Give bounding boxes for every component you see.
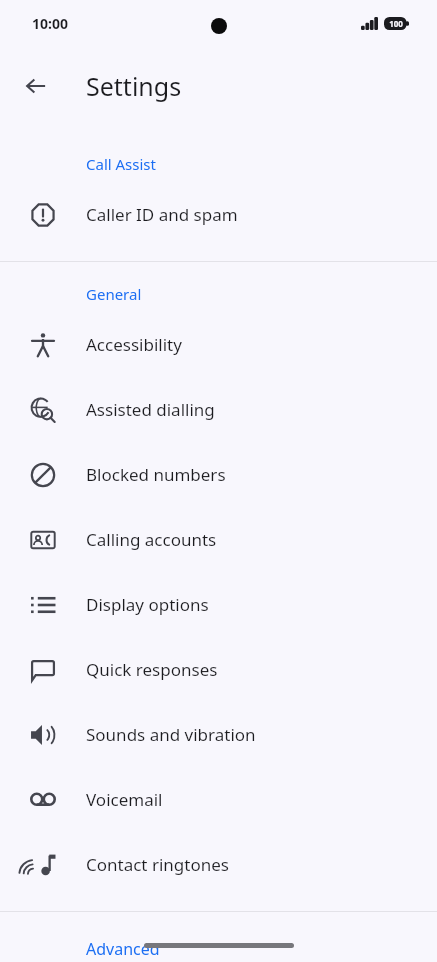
staticText: 100: [389, 18, 403, 29]
button[interactable]: Calling accounts: [0, 507, 437, 572]
staticText: Caller ID and spam: [86, 203, 238, 226]
staticText: Accessibility: [86, 333, 182, 356]
staticText: Quick responses: [86, 658, 218, 681]
button[interactable]: Sounds and vibration: [0, 702, 437, 767]
staticText: Blocked numbers: [86, 463, 226, 486]
staticText: General: [86, 284, 142, 304]
staticText: Contact ringtones: [86, 853, 229, 876]
button[interactable]: Quick responses: [0, 637, 437, 702]
staticText: Sounds and vibration: [86, 723, 256, 746]
button[interactable]: Back: [12, 62, 60, 110]
button[interactable]: Caller ID and spam: [0, 182, 437, 247]
staticText: Advanced: [86, 938, 160, 960]
button[interactable]: Display options: [0, 572, 437, 637]
staticText: Settings: [86, 69, 182, 103]
button[interactable]: Blocked numbers: [0, 442, 437, 507]
button[interactable]: Assisted dialling: [0, 377, 437, 442]
staticText: Call Assist: [86, 154, 156, 174]
staticText: Calling accounts: [86, 528, 217, 551]
button[interactable]: Contact ringtones: [0, 832, 437, 897]
staticText: 10:00: [32, 14, 68, 33]
button[interactable]: Voicemail: [0, 767, 437, 832]
staticText: Voicemail: [86, 788, 163, 811]
button[interactable]: Advanced: [0, 935, 437, 962]
button[interactable]: Accessibility: [0, 312, 437, 377]
staticText: Assisted dialling: [86, 398, 215, 421]
staticText: Display options: [86, 593, 209, 616]
